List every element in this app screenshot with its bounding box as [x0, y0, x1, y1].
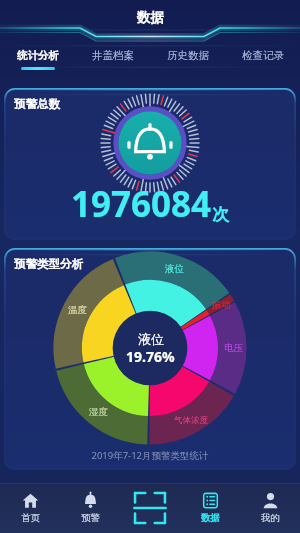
- staticText: 数据: [201, 512, 220, 524]
- staticText: 预警: [81, 512, 100, 524]
- button[interactable]: 首页: [0, 483, 60, 533]
- staticText: 电压: [224, 342, 243, 354]
- staticText: 我的: [261, 512, 280, 524]
- staticText: 次: [212, 204, 229, 225]
- staticText: 井盖档案: [92, 49, 134, 62]
- staticText: 湿度: [89, 406, 108, 418]
- staticText: 温度: [68, 304, 87, 316]
- staticText: 振动: [212, 299, 231, 311]
- staticText: 19.76%: [126, 347, 175, 366]
- button[interactable]: 历史数据: [150, 40, 225, 78]
- staticText: 液位: [165, 263, 184, 275]
- button[interactable]: 数据: [180, 483, 240, 533]
- button[interactable]: 检查记录: [225, 40, 300, 78]
- button[interactable]: 扫一扫: [120, 483, 180, 533]
- button[interactable]: 预警: [60, 483, 120, 533]
- staticText: 首页: [21, 512, 40, 524]
- button[interactable]: 统计分析: [0, 40, 75, 78]
- staticText: 数据: [137, 9, 164, 26]
- staticText: 1976084: [71, 180, 212, 228]
- button[interactable]: 井盖档案: [75, 40, 150, 78]
- button[interactable]: 我的: [240, 483, 300, 533]
- staticText: 历史数据: [167, 49, 209, 62]
- staticText: 液位: [138, 331, 164, 347]
- staticText: 预警总数: [14, 97, 60, 111]
- staticText: 统计分析: [17, 49, 59, 62]
- staticText: 2019年7-12月预警类型统计: [91, 449, 209, 462]
- staticText: 预警类型分析: [14, 257, 83, 271]
- staticText: 气体浓度: [174, 415, 208, 426]
- staticText: 检查记录: [242, 49, 284, 62]
